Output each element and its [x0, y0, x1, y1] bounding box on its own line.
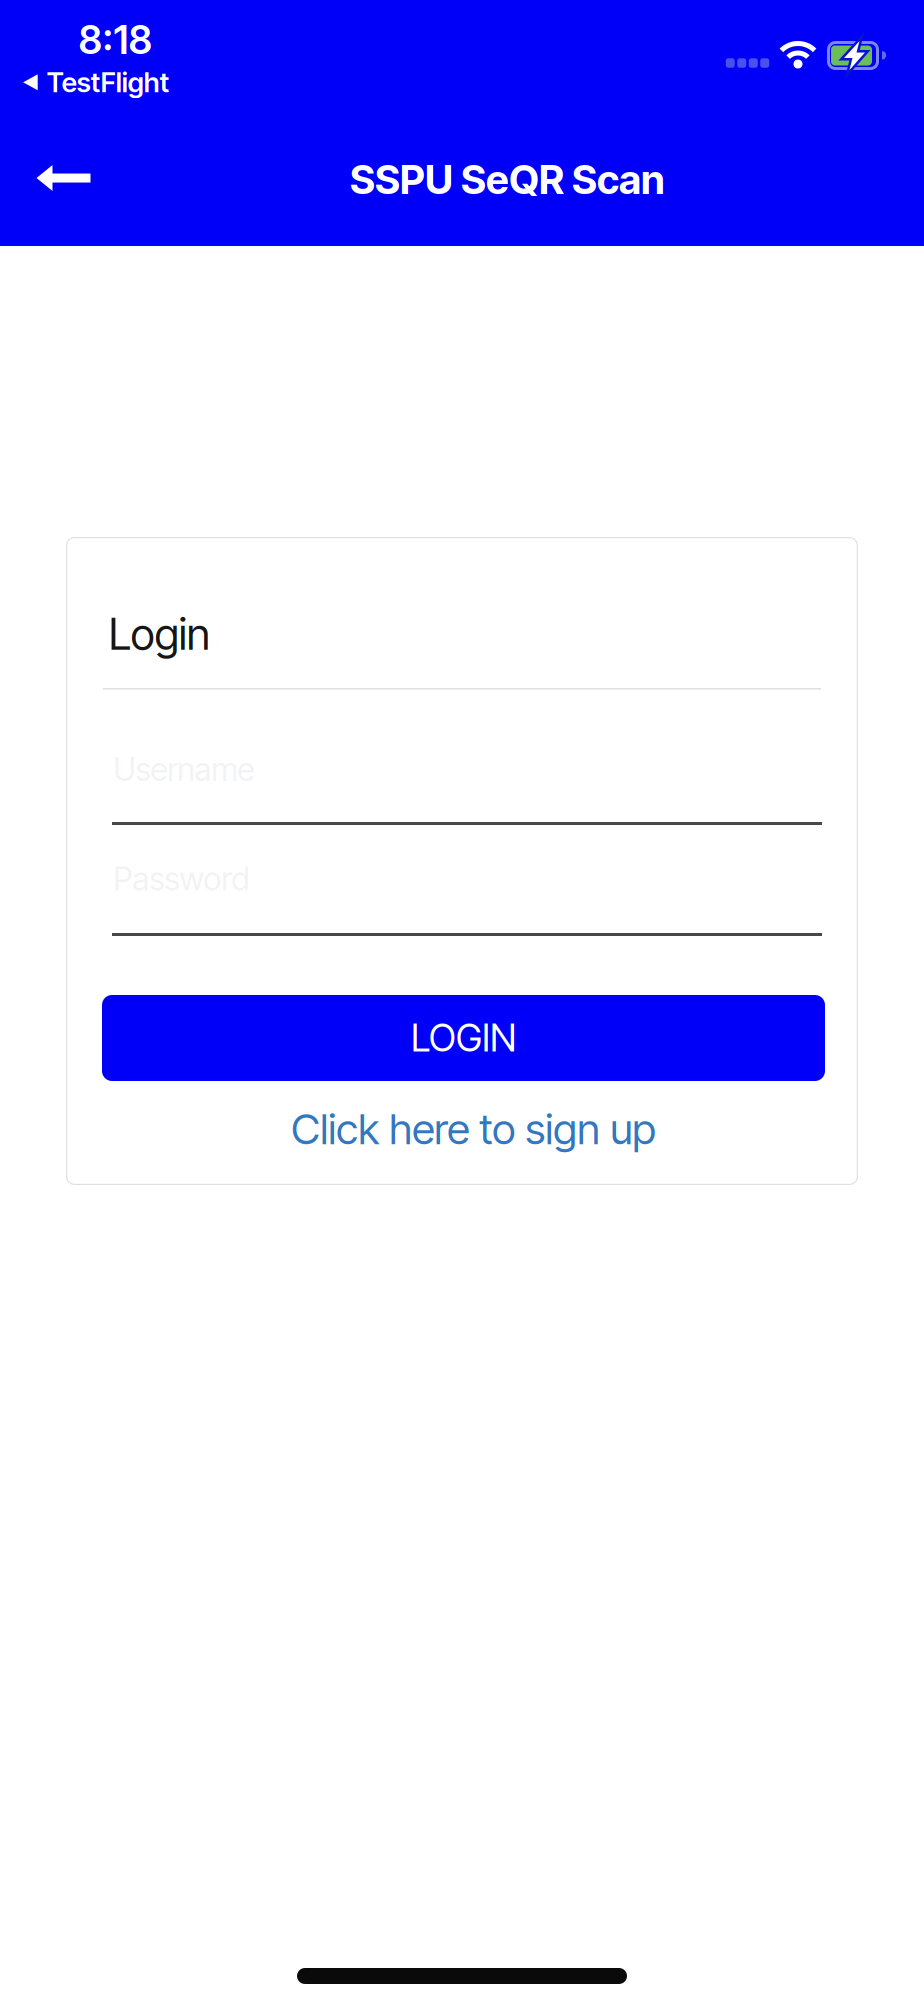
staticText: 8:18: [78, 17, 152, 63]
button[interactable]: LOGIN: [102, 995, 825, 1081]
button[interactable]: Click here to sign up: [291, 1104, 656, 1154]
staticText: Login: [109, 608, 210, 660]
staticText: Password: [113, 859, 249, 898]
staticText: TestFlight: [47, 66, 169, 99]
staticText: Username: [113, 750, 254, 789]
button[interactable]: TestFlight: [23, 66, 169, 99]
staticText: LOGIN: [411, 1015, 516, 1061]
button[interactable]: [0, 145, 110, 211]
staticText: Click here to sign up: [291, 1104, 656, 1154]
staticText: SSPU SeQR Scan: [350, 155, 665, 204]
